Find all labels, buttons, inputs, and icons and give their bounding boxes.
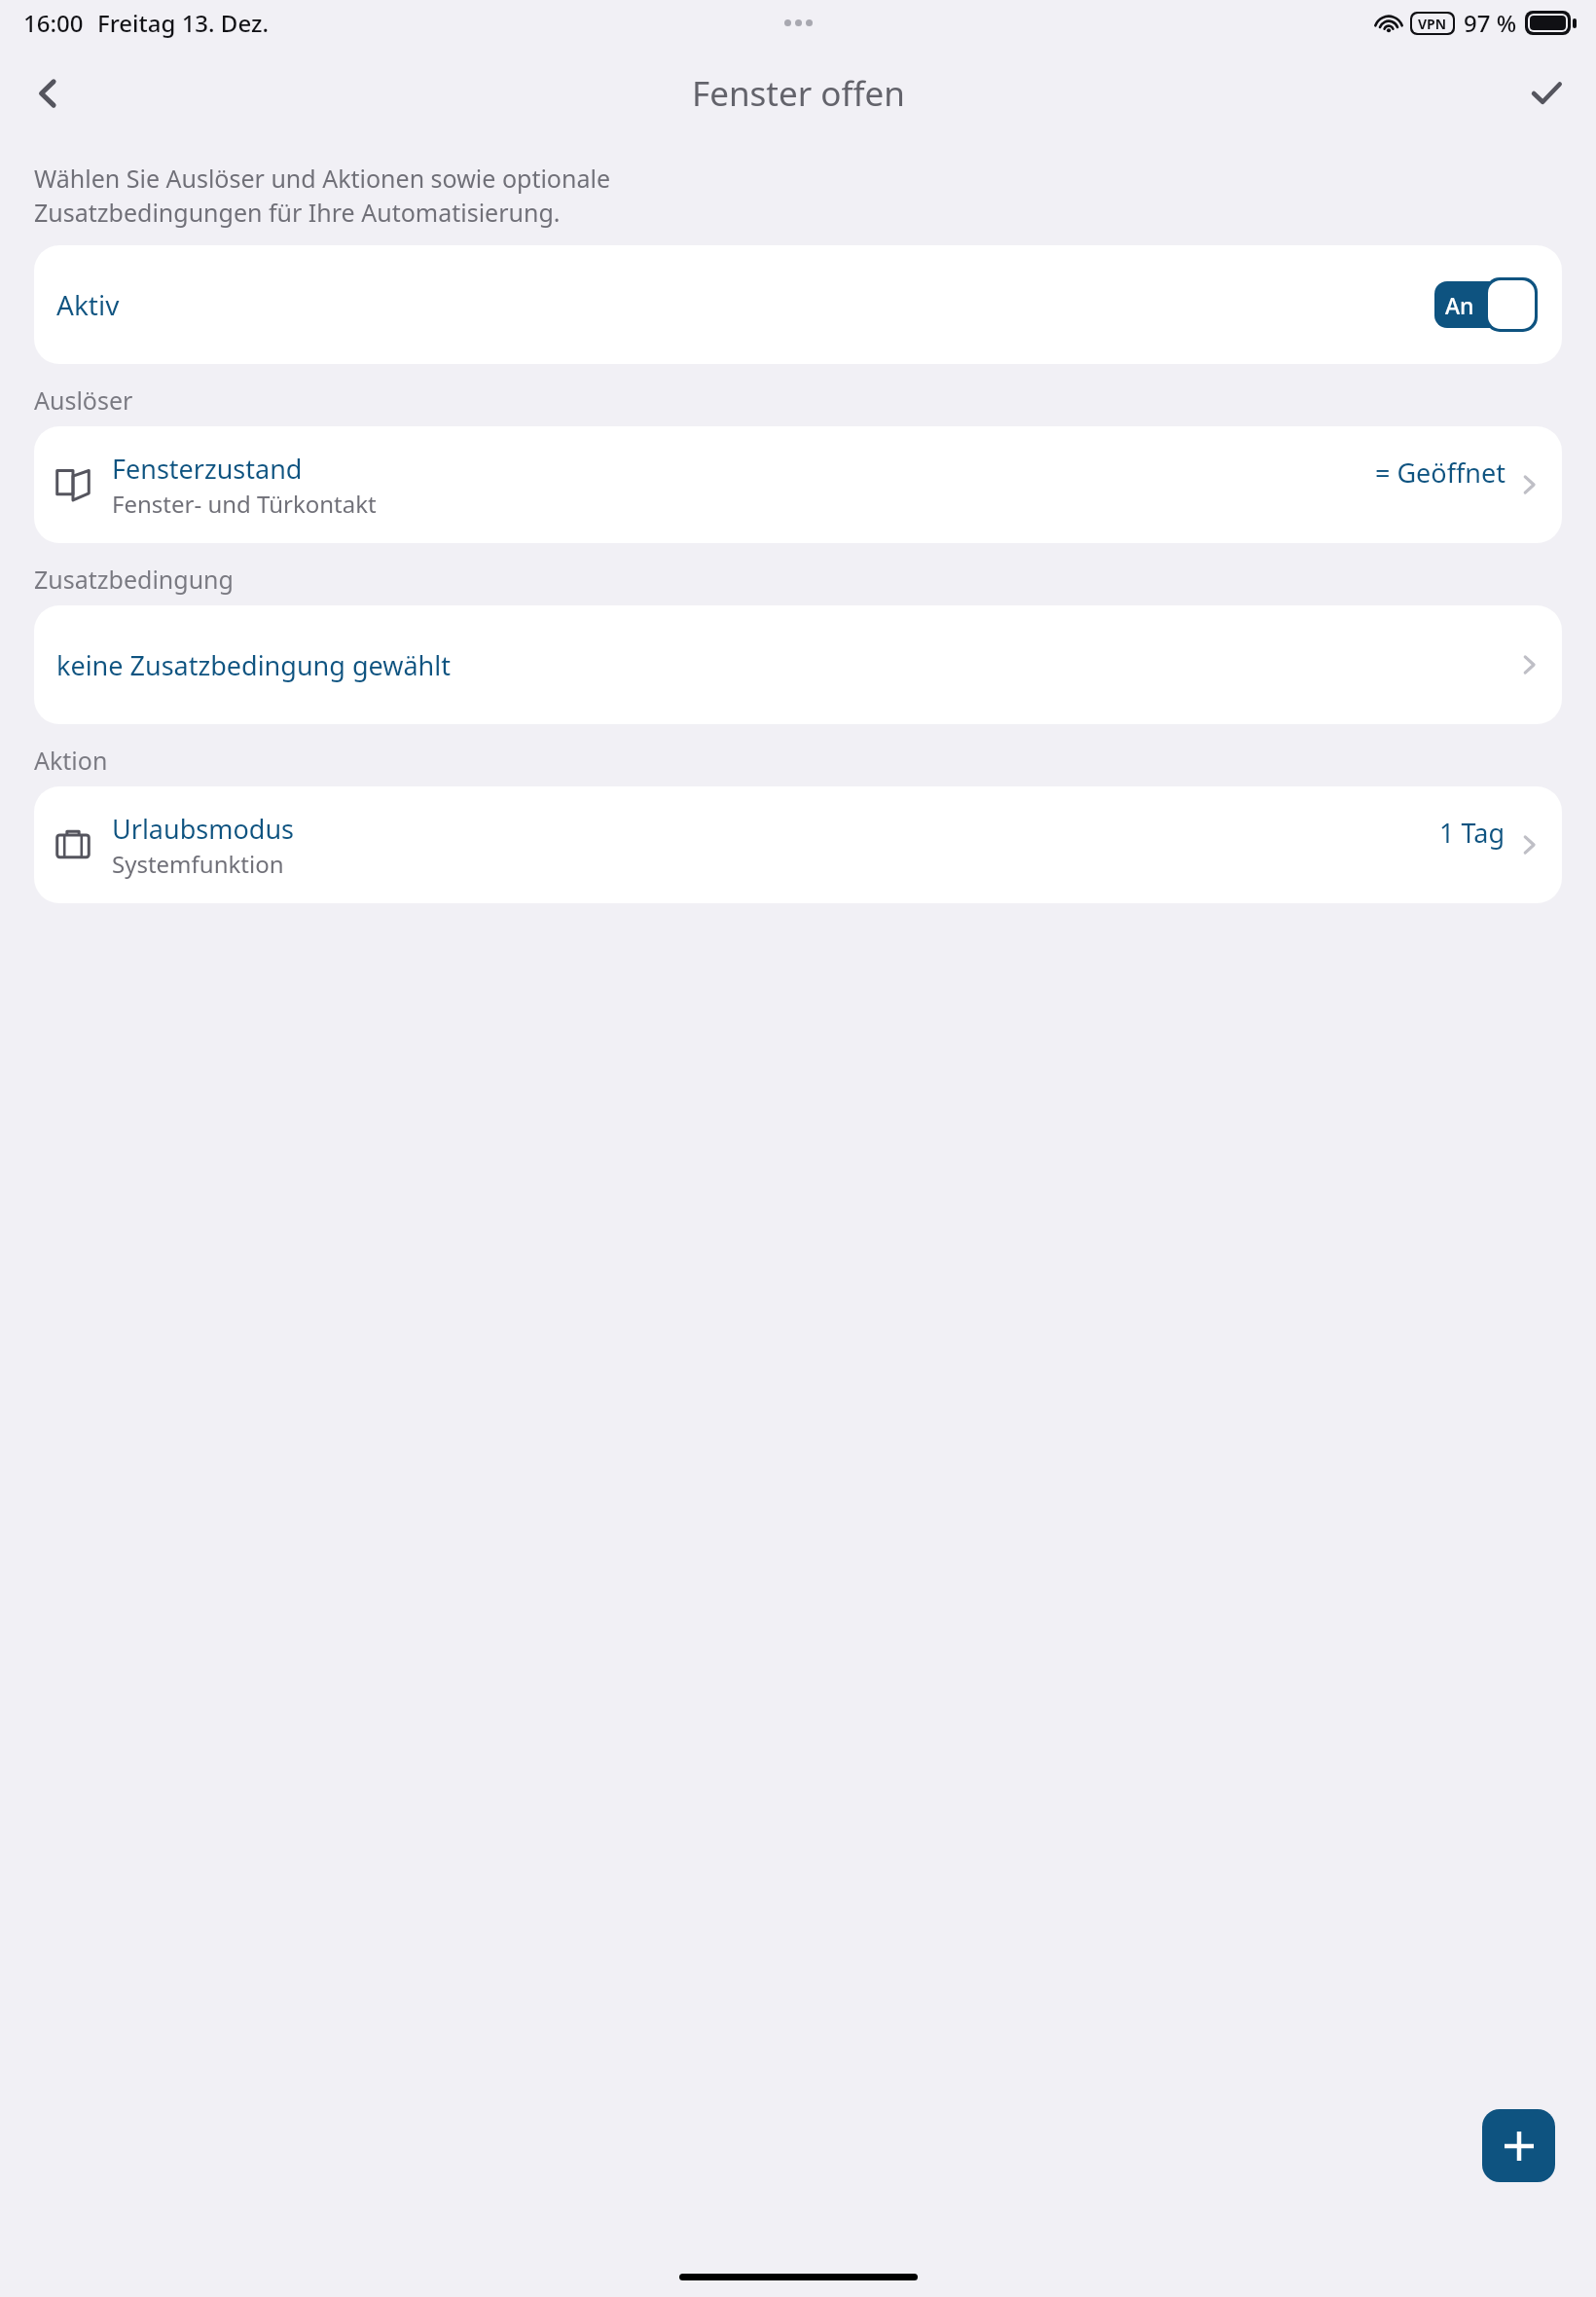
staticText: 16:00 [23,7,84,39]
staticText: 1 Tag [1439,815,1505,851]
button[interactable]: Aktiv einschalten [1434,277,1538,332]
staticText: Aktiv [56,286,120,323]
staticText: Aktion [34,744,108,777]
button[interactable]: Urlaubsmodus [34,786,1562,903]
staticText: Zusatzbedingung [34,563,234,596]
staticText: Wählen Sie Auslöser und Aktionen sowie o… [34,162,611,230]
button[interactable]: Fensterzustand [34,426,1562,543]
button[interactable]: Hinzufügen [1482,2109,1555,2182]
button[interactable]: Zurück [12,57,84,129]
staticText: 97 % [1464,7,1517,39]
staticText: Freitag 13. Dez. [97,7,269,39]
staticText: = Geöffnet [1375,455,1505,491]
staticText: Fensterzustand [112,451,303,487]
staticText: Fenster offen [692,70,905,117]
staticText: Systemfunktion [112,848,284,880]
staticText: keine Zusatzbedingung gewählt [56,647,451,683]
staticText: VPN [1418,15,1447,33]
button[interactable]: Speichern [1510,57,1582,129]
staticText: Fenster- und Türkontakt [112,488,377,520]
staticText: An [1445,290,1474,320]
button[interactable]: keine Zusatzbedingung gewählt [34,605,1562,724]
staticText: Urlaubsmodus [112,811,295,847]
button[interactable]: Aktiv [34,245,1562,364]
staticText: Auslöser [34,383,133,417]
